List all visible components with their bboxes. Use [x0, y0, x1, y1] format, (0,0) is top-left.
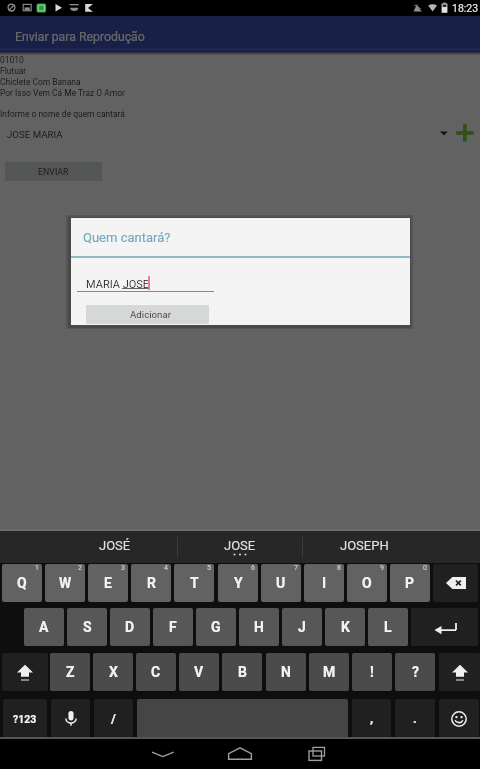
staticText: 8	[337, 564, 341, 572]
button[interactable]: G	[196, 608, 236, 646]
staticText: A	[39, 619, 49, 635]
staticText: MARIA JOSE	[86, 278, 150, 291]
staticText: R	[147, 575, 156, 591]
staticText: F	[169, 619, 177, 635]
button[interactable]: E	[88, 564, 128, 602]
staticText: L	[384, 619, 392, 635]
button[interactable]: C	[136, 653, 176, 691]
button[interactable]: Enviar para Reprodução	[15, 16, 145, 48]
staticText: M	[323, 664, 336, 680]
button[interactable]: J	[282, 608, 322, 646]
button[interactable]: T	[174, 564, 214, 602]
staticText: ENVIAR	[38, 167, 69, 177]
staticText: ?123	[13, 713, 37, 725]
staticText: Enviar para Reprodução	[15, 30, 145, 44]
button[interactable]: O	[347, 564, 387, 602]
button[interactable]: F	[153, 608, 193, 646]
staticText: X	[109, 664, 118, 680]
staticText: K	[341, 619, 350, 635]
button[interactable]: .	[395, 699, 435, 738]
staticText: P	[405, 575, 415, 591]
button[interactable]: Shift	[439, 653, 480, 691]
staticText: S	[83, 619, 92, 635]
button[interactable]: ?123	[3, 699, 47, 738]
staticText: JOSEPH	[340, 538, 389, 553]
staticText: B	[238, 664, 247, 680]
button[interactable]: Início	[227, 743, 253, 765]
staticText: 7	[294, 564, 298, 572]
button[interactable]: ?	[395, 653, 435, 691]
button[interactable]: JOSEPH	[302, 531, 426, 560]
button[interactable]: I	[304, 564, 344, 602]
staticText: ?	[412, 664, 419, 680]
staticText: E	[104, 575, 112, 591]
staticText: Por Isso Vem Cá Me Traz O Amor	[0, 88, 125, 98]
staticText: 01010	[0, 55, 24, 65]
staticText: ,	[370, 711, 374, 726]
staticText: Z	[66, 664, 75, 680]
staticText: N	[281, 664, 291, 680]
button[interactable]: Emoji	[439, 699, 479, 738]
button[interactable]: A	[24, 608, 64, 646]
staticText: 0	[423, 564, 427, 572]
button[interactable]: B	[222, 653, 262, 691]
button[interactable]: Y	[218, 564, 258, 602]
button[interactable]: P	[390, 564, 430, 602]
button[interactable]: N	[266, 653, 306, 691]
button[interactable]: D	[110, 608, 150, 646]
staticText: JOSÉ	[99, 538, 131, 553]
staticText: Informe o nome de quem cantará	[0, 109, 125, 119]
staticText: T	[190, 575, 199, 591]
button[interactable]: V	[179, 653, 219, 691]
staticText: 3	[121, 564, 125, 572]
button[interactable]: Enter	[411, 608, 478, 646]
staticText: /	[111, 711, 116, 726]
button[interactable]: ,	[352, 699, 391, 738]
button[interactable]: Z	[50, 653, 90, 691]
staticText: O	[362, 575, 372, 591]
button[interactable]: L	[368, 608, 408, 646]
button[interactable]: W	[45, 564, 85, 602]
button[interactable]: Adicionar	[86, 305, 209, 324]
button[interactable]: H	[239, 608, 279, 646]
button[interactable]: Recentes	[305, 743, 331, 765]
button[interactable]: ENVIAR	[5, 162, 102, 181]
staticText: U	[276, 575, 286, 591]
staticText: .	[413, 711, 417, 726]
staticText: Flutuar	[0, 66, 27, 76]
staticText: Chiclete Com Banana	[0, 77, 81, 87]
staticText: J	[298, 619, 306, 635]
staticText: C	[151, 664, 161, 680]
staticText: V	[194, 664, 204, 680]
staticText: JOSE MARIA	[7, 129, 63, 140]
button[interactable]: U	[261, 564, 301, 602]
button[interactable]: Shift	[2, 653, 48, 691]
staticText: 4	[164, 564, 168, 572]
button[interactable]: JOSÉ	[53, 531, 177, 560]
button[interactable]: Voltar	[150, 743, 176, 765]
staticText: I	[322, 575, 327, 591]
button[interactable]: !	[352, 653, 392, 691]
button[interactable]: Adicionar cantor	[453, 121, 477, 145]
button[interactable]: X	[93, 653, 133, 691]
button[interactable]: S	[67, 608, 107, 646]
staticText: Quem cantará?	[83, 230, 171, 245]
button[interactable]: Q	[2, 564, 42, 602]
button[interactable]: Abrir lista	[434, 122, 454, 144]
button[interactable]: Apagar	[433, 564, 478, 602]
staticText: 9	[380, 564, 384, 572]
staticText: JOSE	[224, 538, 256, 553]
button[interactable]: JOSE	[178, 531, 302, 560]
staticText: 1	[35, 564, 39, 572]
staticText: 5	[207, 564, 211, 572]
button[interactable]: M	[309, 653, 349, 691]
button[interactable]: K	[325, 608, 365, 646]
button[interactable]: /	[94, 699, 133, 738]
button[interactable]: R	[131, 564, 171, 602]
staticText: 6	[251, 564, 255, 572]
staticText: !	[370, 664, 374, 680]
staticText: G	[211, 619, 221, 635]
button[interactable]: Voz	[51, 699, 90, 738]
staticText: Adicionar	[130, 309, 171, 320]
